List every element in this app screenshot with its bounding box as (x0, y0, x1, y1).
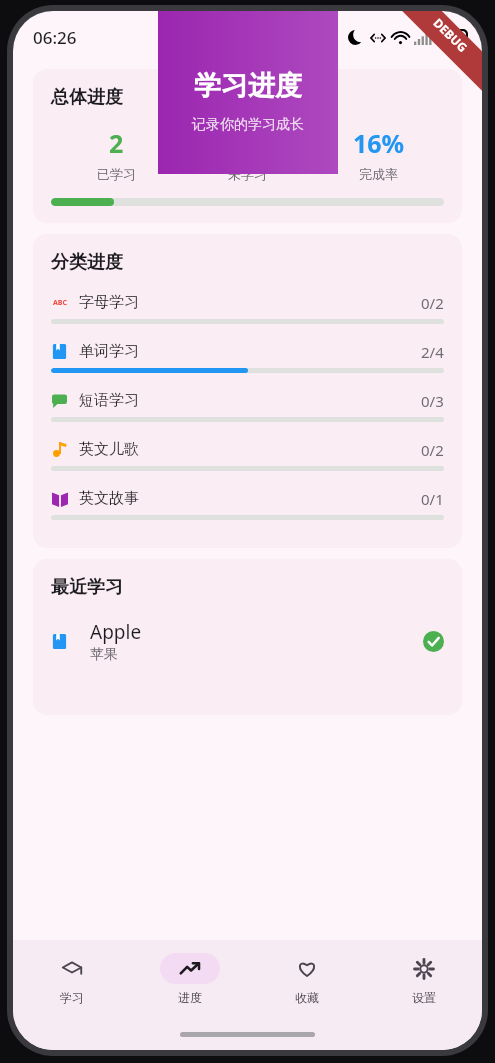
button[interactable]: 进度 (131, 940, 248, 1018)
button[interactable]: Apple (51, 619, 444, 664)
staticText: 10 (233, 126, 262, 160)
staticText: 0/3 (421, 391, 444, 411)
staticText: 16% (353, 126, 405, 160)
button[interactable]: 短语学习 (51, 384, 444, 433)
staticText: Apple (90, 619, 142, 645)
staticText: 英文儿歌 (79, 440, 139, 459)
staticText: 设置 (412, 990, 436, 1005)
staticText: 英文故事 (79, 489, 139, 508)
staticText: 2 (109, 126, 124, 160)
staticText: 已学习 (97, 166, 136, 182)
staticText: 0/2 (421, 293, 444, 313)
button[interactable]: 英文故事 (51, 482, 444, 531)
staticText: 分类进度 (51, 251, 123, 274)
button[interactable]: 英文儿歌 (51, 433, 444, 482)
staticText: 收藏 (295, 990, 319, 1005)
staticText: 0/1 (421, 489, 444, 509)
staticText: 完成率 (359, 166, 398, 182)
staticText: 单词学习 (79, 342, 139, 361)
staticText: 最近学习 (51, 576, 123, 599)
staticText: 字母学习 (79, 293, 139, 312)
staticText: 学习进度 (194, 69, 302, 103)
button[interactable]: ABC (51, 286, 444, 335)
staticText: 记录你的学习成长 (192, 116, 304, 134)
button[interactable]: 单词学习 (51, 335, 444, 384)
staticText: 2/4 (421, 342, 444, 362)
staticText: 100 (445, 32, 461, 44)
staticText: 06:26 (33, 26, 77, 49)
button[interactable]: 学习 (13, 940, 131, 1018)
staticText: 短语学习 (79, 391, 139, 410)
staticText: DEBUG (430, 14, 471, 55)
staticText: 总体进度 (51, 86, 123, 109)
button[interactable]: 学习进度 (158, 11, 338, 174)
button[interactable]: 设置 (365, 940, 482, 1018)
button[interactable]: 收藏 (248, 940, 365, 1018)
staticText: 苹果 (90, 646, 118, 664)
staticText: 进度 (178, 990, 202, 1005)
staticText: 0/2 (421, 440, 444, 460)
staticText: ABC (53, 298, 67, 308)
staticText: 学习 (60, 990, 84, 1005)
staticText: 未学习 (228, 166, 267, 182)
